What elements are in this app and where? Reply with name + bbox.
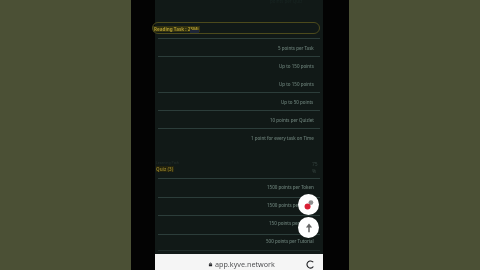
button[interactable]: Up to 150 points: [155, 74, 323, 92]
staticText: 5 points per Task: [278, 45, 314, 51]
staticText: 10 points per Quizlet: [270, 117, 314, 123]
button[interactable]: 5 points per Task: [155, 38, 323, 56]
staticText: Learning Path: [156, 160, 180, 165]
button[interactable]: Up to 50 points: [155, 92, 323, 110]
button[interactable]: 1 point for every task on Time: [155, 128, 323, 146]
staticText: 1 point for every task on Time: [251, 135, 314, 141]
staticText: 1500 points per Token: [267, 202, 314, 208]
staticText: 500 points per Tutorial: [266, 238, 314, 244]
button[interactable]: Support chat: [298, 194, 319, 215]
staticText: Quiz (3): [156, 166, 174, 172]
staticText: 75 %: [312, 161, 318, 175]
staticText: app.kyve.network: [215, 259, 275, 269]
staticText: Up to 50 points: [281, 99, 314, 105]
staticText: Up to 150 points: [279, 81, 314, 87]
button[interactable]: Quiz (3): [156, 166, 174, 172]
staticText: 150 points per Token: [269, 220, 314, 226]
staticText: Up to 150 points: [279, 63, 314, 69]
button[interactable]: 1500 points per Token: [155, 183, 314, 191]
staticText: Reading Task : 23Mi: [154, 26, 199, 32]
staticText: 1500 points per Token: [267, 184, 314, 190]
button[interactable]: 1500 points per Token: [155, 201, 314, 209]
button[interactable]: 500 points per Tutorial: [155, 237, 314, 245]
button[interactable]: 150 points per Token: [155, 219, 314, 227]
button[interactable]: Up to 150 points: [155, 56, 323, 74]
button[interactable]: Scroll to top: [298, 217, 319, 238]
button[interactable]: 10 points per Quizlet: [155, 110, 323, 128]
button[interactable]: Reading Task : 23Mi: [152, 22, 320, 34]
button[interactable]: Reload: [305, 259, 315, 269]
